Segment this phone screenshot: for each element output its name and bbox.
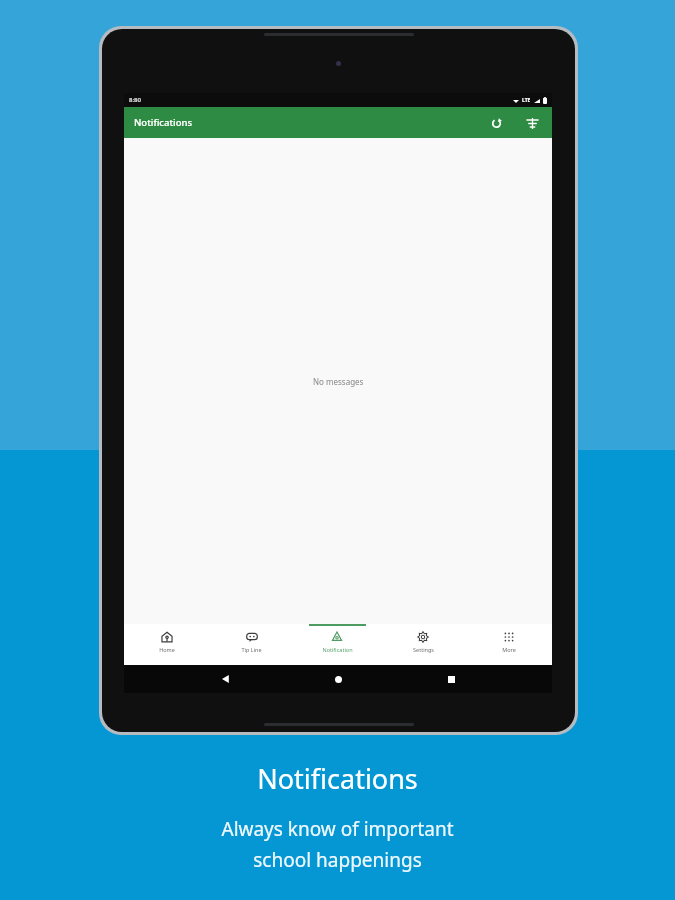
button[interactable]: Recents xyxy=(440,668,462,690)
button[interactable]: Notifications xyxy=(124,107,552,138)
staticText: Notifications xyxy=(134,116,193,129)
button[interactable]: Notification xyxy=(294,624,380,665)
staticText: Notifications xyxy=(257,760,418,797)
staticText: Tip Line xyxy=(241,646,262,653)
staticText: Notification xyxy=(322,646,353,653)
staticText: 8:80 xyxy=(129,96,141,104)
button[interactable]: More xyxy=(466,624,552,665)
staticText: No messages xyxy=(313,376,364,387)
button[interactable]: Filter xyxy=(522,113,542,133)
button[interactable]: Back xyxy=(215,668,237,690)
button[interactable]: Refresh xyxy=(486,113,506,133)
staticText: Settings xyxy=(413,646,434,653)
button[interactable]: Settings xyxy=(380,624,466,665)
staticText: Always know of important xyxy=(221,816,454,842)
button[interactable]: Home xyxy=(124,624,209,665)
staticText: More xyxy=(502,646,516,653)
staticText: school happenings xyxy=(253,847,422,873)
button[interactable]: Tip Line xyxy=(209,624,294,665)
button[interactable]: Home xyxy=(327,668,349,690)
staticText: LTE xyxy=(522,97,531,104)
staticText: Home xyxy=(159,646,175,653)
